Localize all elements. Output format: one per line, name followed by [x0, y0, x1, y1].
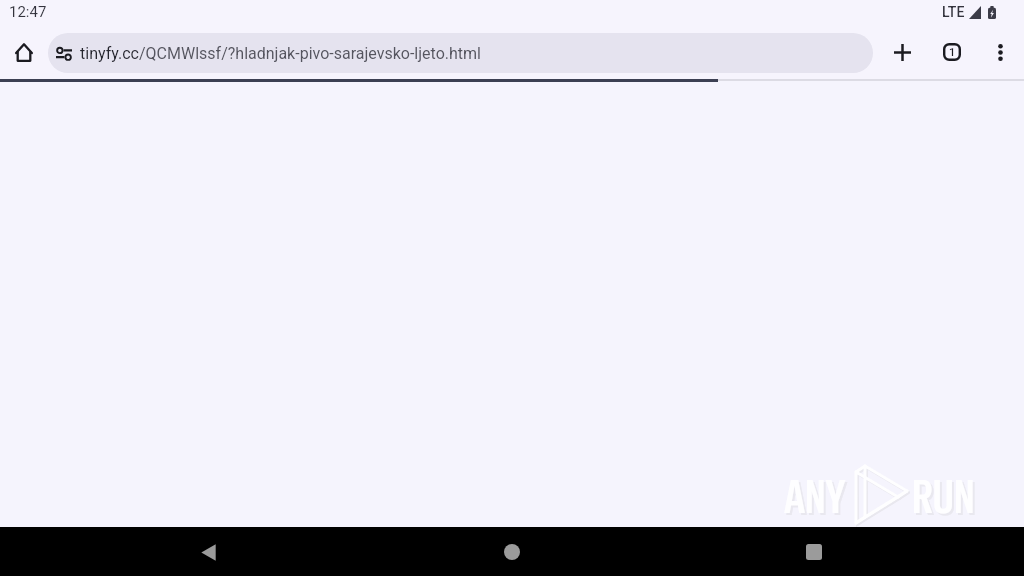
staticText: 1	[949, 46, 956, 59]
staticText: ANY	[786, 468, 848, 528]
staticText: LTE	[942, 4, 965, 20]
staticText: ANY	[784, 466, 846, 526]
button[interactable]: New tab	[878, 28, 926, 76]
button[interactable]: Back	[184, 528, 232, 576]
button[interactable]: Switch tabs, 1 tab open	[928, 28, 976, 76]
button[interactable]: Home	[488, 528, 536, 576]
button[interactable]: Recent apps	[790, 528, 838, 576]
staticText: /QCMWlssf/?hladnjak-pivo-sarajevsko-ljet…	[139, 44, 481, 63]
staticText: RUN	[912, 466, 975, 526]
staticText: tinyfy.cc	[80, 44, 139, 63]
button[interactable]: More options	[976, 28, 1024, 76]
button[interactable]: Home	[0, 28, 48, 76]
staticText: 12:47	[9, 3, 47, 21]
button[interactable]: tinyfy.cc	[48, 33, 873, 73]
staticText: RUN	[914, 468, 977, 528]
